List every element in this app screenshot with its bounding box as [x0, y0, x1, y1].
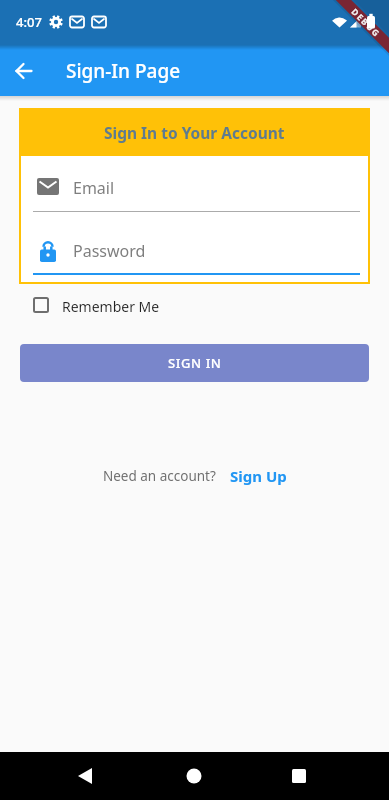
button[interactable]: Email — [37, 177, 115, 196]
button[interactable]: Sign Up — [230, 466, 287, 486]
staticText: SIGN IN — [168, 354, 222, 372]
staticText: Sign-In Page — [66, 58, 181, 84]
button[interactable] — [0, 45, 48, 96]
button[interactable]: Password — [37, 240, 146, 262]
staticText: Password — [73, 240, 146, 262]
button[interactable]: SIGN IN — [20, 344, 369, 382]
staticText: DEBUG — [349, 6, 383, 40]
button[interactable] — [259, 752, 389, 800]
button[interactable] — [0, 752, 129, 800]
staticText: Remember Me — [62, 297, 160, 313]
button[interactable]: Remember Me — [33, 297, 160, 313]
staticText: Need an account? — [103, 467, 216, 485]
button[interactable] — [129, 752, 259, 800]
staticText: Sign In to Your Account — [104, 122, 285, 143]
staticText: Email — [73, 177, 115, 196]
staticText: 4:07 — [16, 13, 42, 31]
